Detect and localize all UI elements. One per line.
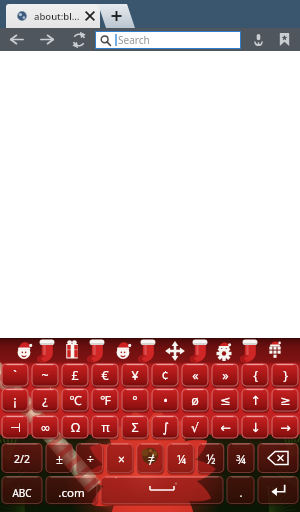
button[interactable]: π bbox=[90, 416, 120, 439]
button[interactable]: 2/2 bbox=[0, 444, 44, 474]
staticText: ¡ bbox=[13, 392, 17, 409]
staticText: ` bbox=[13, 367, 17, 384]
button[interactable]: about:bl… bbox=[6, 4, 100, 28]
button[interactable]: ↓ bbox=[240, 416, 270, 439]
staticText: ÷ bbox=[87, 451, 94, 467]
button[interactable]: Ω bbox=[60, 416, 90, 439]
staticText: about:bl… bbox=[34, 10, 80, 23]
button[interactable]: Voice search bbox=[247, 28, 270, 51]
staticText: √ bbox=[191, 420, 199, 435]
button[interactable]: ` bbox=[0, 364, 30, 387]
staticText: ≥ bbox=[280, 393, 291, 408]
button[interactable]: Close tab bbox=[82, 8, 98, 24]
staticText: 2/2 bbox=[14, 452, 30, 466]
button[interactable]: ↑ bbox=[240, 389, 270, 412]
staticText: ¼ bbox=[177, 451, 186, 467]
button[interactable]: ← bbox=[210, 416, 240, 439]
staticText: ½ bbox=[206, 451, 216, 467]
staticText: ¢ bbox=[161, 367, 169, 384]
button[interactable]: Backspace bbox=[256, 444, 300, 474]
button[interactable]: Sticker 11 bbox=[273, 338, 300, 363]
button[interactable]: ℃ bbox=[60, 389, 90, 412]
button[interactable]: Sticker 3 bbox=[56, 338, 84, 363]
button[interactable]: ≥ bbox=[270, 389, 300, 412]
button[interactable]: Sticker 4 bbox=[84, 338, 111, 363]
staticText: « bbox=[192, 367, 199, 384]
staticText: ¿ bbox=[42, 392, 48, 409]
button[interactable]: New tab bbox=[98, 4, 135, 28]
button[interactable]: « bbox=[180, 364, 210, 387]
button[interactable]: £ bbox=[60, 364, 90, 387]
button[interactable]: .com bbox=[44, 479, 99, 507]
button[interactable]: ∞ bbox=[30, 416, 60, 439]
staticText: ∫ bbox=[162, 420, 169, 435]
button[interactable]: • bbox=[150, 389, 180, 412]
staticText: . bbox=[239, 485, 243, 501]
button[interactable]: ℉ bbox=[90, 389, 120, 412]
button[interactable]: Sticker 6 bbox=[138, 338, 165, 363]
button[interactable]: ½ bbox=[196, 444, 226, 474]
button[interactable]: Σ bbox=[120, 416, 150, 439]
button[interactable]: » bbox=[210, 364, 240, 387]
staticText: £ bbox=[71, 367, 79, 384]
staticText: ≠ bbox=[148, 451, 155, 467]
staticText: ¥ bbox=[131, 367, 139, 384]
staticText: Σ bbox=[131, 419, 139, 436]
staticText: ≤ bbox=[220, 393, 231, 408]
staticText: .com bbox=[58, 485, 85, 501]
button[interactable]: . bbox=[225, 479, 256, 507]
button[interactable]: ¢ bbox=[150, 364, 180, 387]
staticText: ø bbox=[191, 392, 199, 409]
button[interactable]: Sticker 10 bbox=[246, 338, 273, 363]
button[interactable]: ¥ bbox=[120, 364, 150, 387]
button[interactable]: Sticker 9 bbox=[219, 338, 246, 363]
button[interactable]: € bbox=[90, 364, 120, 387]
staticText: ↓ bbox=[250, 420, 261, 435]
button[interactable]: Sticker 5 bbox=[111, 338, 138, 363]
button[interactable]: ~ bbox=[30, 364, 60, 387]
button[interactable]: Enter bbox=[256, 479, 300, 507]
button[interactable]: ± bbox=[44, 444, 75, 474]
button[interactable]: } bbox=[270, 364, 300, 387]
button[interactable]: ≠ bbox=[136, 444, 166, 474]
staticText: • bbox=[163, 392, 168, 409]
button[interactable]: ¼ bbox=[166, 444, 196, 474]
button[interactable]: ¡ bbox=[0, 389, 30, 412]
button[interactable]: ⊣ bbox=[0, 416, 30, 439]
button[interactable]: ÷ bbox=[75, 444, 106, 474]
staticText: ← bbox=[220, 420, 231, 435]
button[interactable]: Sticker 1 bbox=[0, 338, 28, 363]
button[interactable]: Back bbox=[3, 28, 30, 51]
button[interactable]: Forward bbox=[34, 28, 61, 51]
button[interactable]: Sticker 2 bbox=[28, 338, 56, 363]
staticText: ↑ bbox=[250, 393, 261, 408]
staticText: { bbox=[253, 367, 258, 384]
staticText: ⊣ bbox=[10, 420, 21, 435]
staticText: } bbox=[283, 367, 288, 384]
button[interactable]: ¿ bbox=[30, 389, 60, 412]
button[interactable]: ∫ bbox=[150, 416, 180, 439]
staticText: ABC bbox=[12, 486, 32, 500]
button[interactable]: × bbox=[106, 444, 136, 474]
button[interactable]: ¾ bbox=[226, 444, 256, 474]
staticText: Ω bbox=[71, 419, 80, 436]
button[interactable]: Sticker 7 bbox=[165, 338, 192, 363]
button[interactable]: ø bbox=[180, 389, 210, 412]
button[interactable]: Search bbox=[95, 31, 241, 49]
button[interactable]: ° bbox=[120, 389, 150, 412]
button[interactable]: → bbox=[270, 416, 300, 439]
button[interactable]: ≤ bbox=[210, 389, 240, 412]
staticText: » bbox=[222, 367, 229, 384]
button[interactable]: Space bbox=[99, 479, 225, 507]
button[interactable]: ABC bbox=[0, 479, 44, 507]
button[interactable]: Sticker 8 bbox=[192, 338, 219, 363]
staticText: ℃ bbox=[69, 392, 82, 409]
button[interactable]: { bbox=[240, 364, 270, 387]
staticText: ~ bbox=[41, 367, 49, 384]
button[interactable]: √ bbox=[180, 416, 210, 439]
button[interactable]: Bookmarks bbox=[272, 28, 296, 51]
staticText: ¾ bbox=[236, 451, 246, 467]
button[interactable]: Reload bbox=[65, 28, 92, 51]
staticText: × bbox=[118, 451, 125, 467]
staticText: → bbox=[280, 420, 291, 435]
